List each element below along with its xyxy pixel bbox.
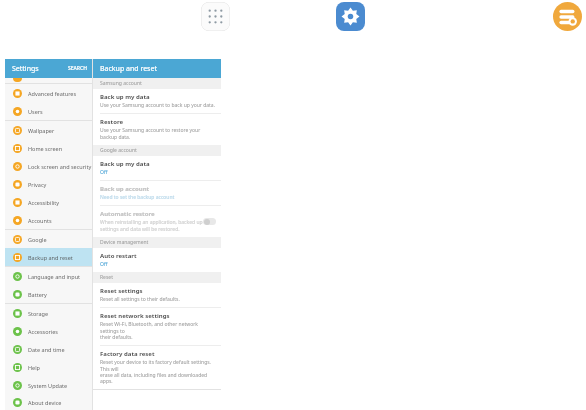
staticText: Accounts [28,217,52,224]
staticText: Wallpaper [28,127,55,134]
staticText: SEARCH [68,65,87,72]
staticText: Users [28,108,43,115]
staticText: About device [28,399,62,406]
staticText: Reset network settings [100,312,170,320]
staticText: Settings [12,64,39,74]
staticText: Language and input [28,273,81,280]
staticText: Back up my data [100,93,150,101]
button[interactable]: Help [5,358,92,376]
button[interactable]: Advanced features [5,84,92,102]
button[interactable]: Accessibility [5,193,92,211]
button[interactable]: Battery [5,285,92,303]
staticText: Automatic restore [100,210,155,218]
staticText: Google account [100,147,137,154]
staticText: Date and time [28,346,65,353]
staticText: Reset all settings to their defaults. [100,296,180,303]
staticText: Advanced features [28,90,77,97]
button[interactable]: Automatic restore toggle [203,218,216,225]
button[interactable]: System Update [5,376,92,394]
staticText: Backup and reset [100,64,157,74]
staticText: Samsung account [100,80,142,87]
staticText: Back up my data [100,160,150,168]
staticText: Lock screen and security [28,163,92,170]
button[interactable]: Date and time [5,340,92,358]
button[interactable]: Auto restart [93,248,221,272]
staticText: System Update [28,382,68,389]
button[interactable]: Backup and reset [553,2,582,31]
button[interactable]: Apps [201,2,230,31]
button[interactable]: Factory data reset [93,346,221,389]
button: Back up account [93,181,221,205]
staticText: Home screen [28,145,63,152]
button[interactable]: Users [5,102,92,120]
button[interactable]: Storage [5,304,92,322]
staticText: Battery [28,291,47,298]
staticText: Reset Wi-Fi, Bluetooth, and other networ… [100,321,216,341]
button[interactable]: Automatic restore [93,206,221,237]
staticText: Off [100,261,108,268]
button[interactable]: Home screen [5,139,92,157]
button[interactable]: Wallpaper [5,121,92,139]
staticText: Google [28,236,47,243]
button[interactable]: About device [5,394,92,410]
staticText: Backup and reset [28,254,73,261]
button[interactable]: Google [5,230,92,248]
staticText: Reset [100,274,113,281]
staticText: Use your Samsung account to back up your… [100,102,215,109]
staticText: Accessories [28,328,58,335]
staticText: Reset settings [100,287,143,295]
staticText: Privacy [28,181,47,188]
staticText: Help [28,364,40,371]
staticText: When reinstalling an application, backed… [100,219,203,233]
staticText: Auto restart [100,252,137,260]
button[interactable]: Privacy [5,175,92,193]
button[interactable]: Language and input [5,267,92,285]
button[interactable]: Backup and reset [5,248,92,266]
button[interactable]: Accessories [5,322,92,340]
staticText: Storage [28,310,49,317]
staticText: Restore [100,118,124,126]
button[interactable]: Accounts [5,211,92,229]
button[interactable]: Back up my data [93,156,221,180]
button[interactable]: Restore [93,114,221,145]
button[interactable]: Reset settings [93,283,221,307]
staticText: Device management [100,239,149,246]
staticText: Factory data reset [100,350,155,358]
button[interactable]: Reset network settings [93,308,221,345]
staticText: Need to set the backup account [100,194,175,201]
staticText: Accessibility [28,199,60,206]
staticText: Back up account [100,185,150,193]
staticText: Off [100,169,108,176]
button[interactable]: Settings [336,2,365,31]
staticText: Reset your device to its factory default… [100,359,216,385]
button[interactable]: Lock screen and security [5,157,92,175]
button[interactable]: SEARCH [68,65,87,72]
button[interactable]: Back up my data [93,89,221,113]
staticText: Use your Samsung account to restore your… [100,127,216,141]
